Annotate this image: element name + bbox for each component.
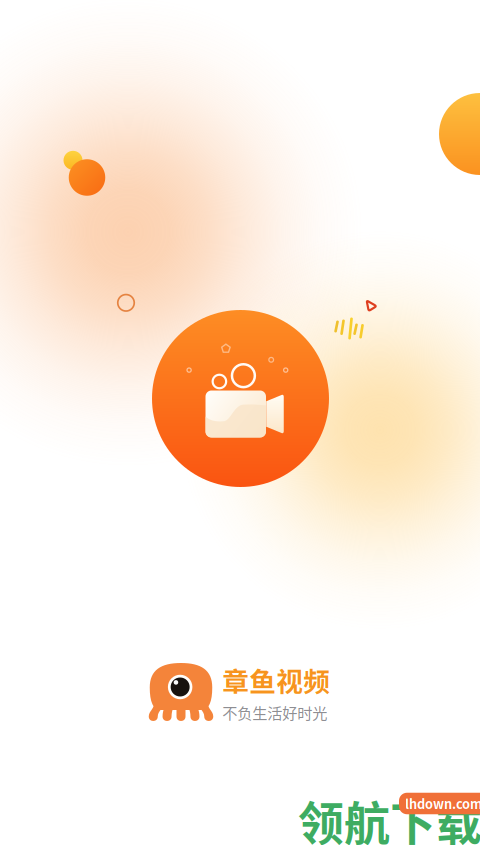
button[interactable]: 章鱼视频	[152, 310, 329, 487]
staticText: lhdown.com	[405, 794, 480, 813]
staticText: 不负生活好时光	[222, 701, 327, 723]
staticText: 领航下载	[298, 787, 480, 853]
staticText: 章鱼视频	[222, 661, 330, 699]
